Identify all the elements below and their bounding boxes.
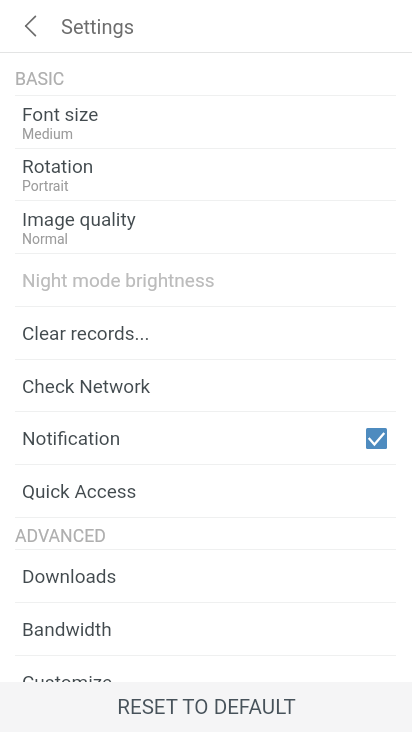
staticText: RESET TO DEFAULT <box>117 695 296 719</box>
staticText: Portrait <box>22 178 69 194</box>
button[interactable]: Quick Access <box>0 465 412 517</box>
button[interactable]: Rotation <box>0 149 412 200</box>
staticText: Font size <box>22 103 99 125</box>
staticText: Medium <box>22 126 73 142</box>
button[interactable]: RESET TO DEFAULT <box>0 682 412 732</box>
button[interactable]: Image quality <box>0 201 412 253</box>
button[interactable]: Check Network <box>0 360 412 411</box>
staticText: ADVANCED <box>15 526 106 547</box>
staticText: Normal <box>22 231 69 247</box>
button[interactable]: Downloads <box>0 550 412 602</box>
button[interactable]: Back <box>5 0 57 52</box>
button[interactable]: Font size <box>0 96 412 148</box>
button[interactable]: Notification <box>0 412 412 464</box>
staticText: Clear records... <box>22 322 150 344</box>
button[interactable]: About <box>0 709 412 732</box>
staticText: Bandwidth <box>22 618 112 640</box>
staticText: Downloads <box>22 565 117 587</box>
button[interactable]: Notification checkbox <box>366 428 387 449</box>
button[interactable]: Clear records... <box>0 307 412 359</box>
staticText: Image quality <box>22 208 136 230</box>
staticText: Notification <box>22 427 121 449</box>
staticText: Customize <box>22 671 113 693</box>
staticText: Settings <box>61 15 135 38</box>
staticText: Night mode brightness <box>22 269 215 291</box>
staticText: Check Network <box>22 375 151 397</box>
staticText: Rotation <box>22 155 94 177</box>
button[interactable]: Customize <box>0 656 412 708</box>
button[interactable]: Bandwidth <box>0 603 412 655</box>
staticText: BASIC <box>15 69 65 90</box>
staticText: Quick Access <box>22 480 137 502</box>
button[interactable]: Night mode brightness <box>0 254 412 306</box>
